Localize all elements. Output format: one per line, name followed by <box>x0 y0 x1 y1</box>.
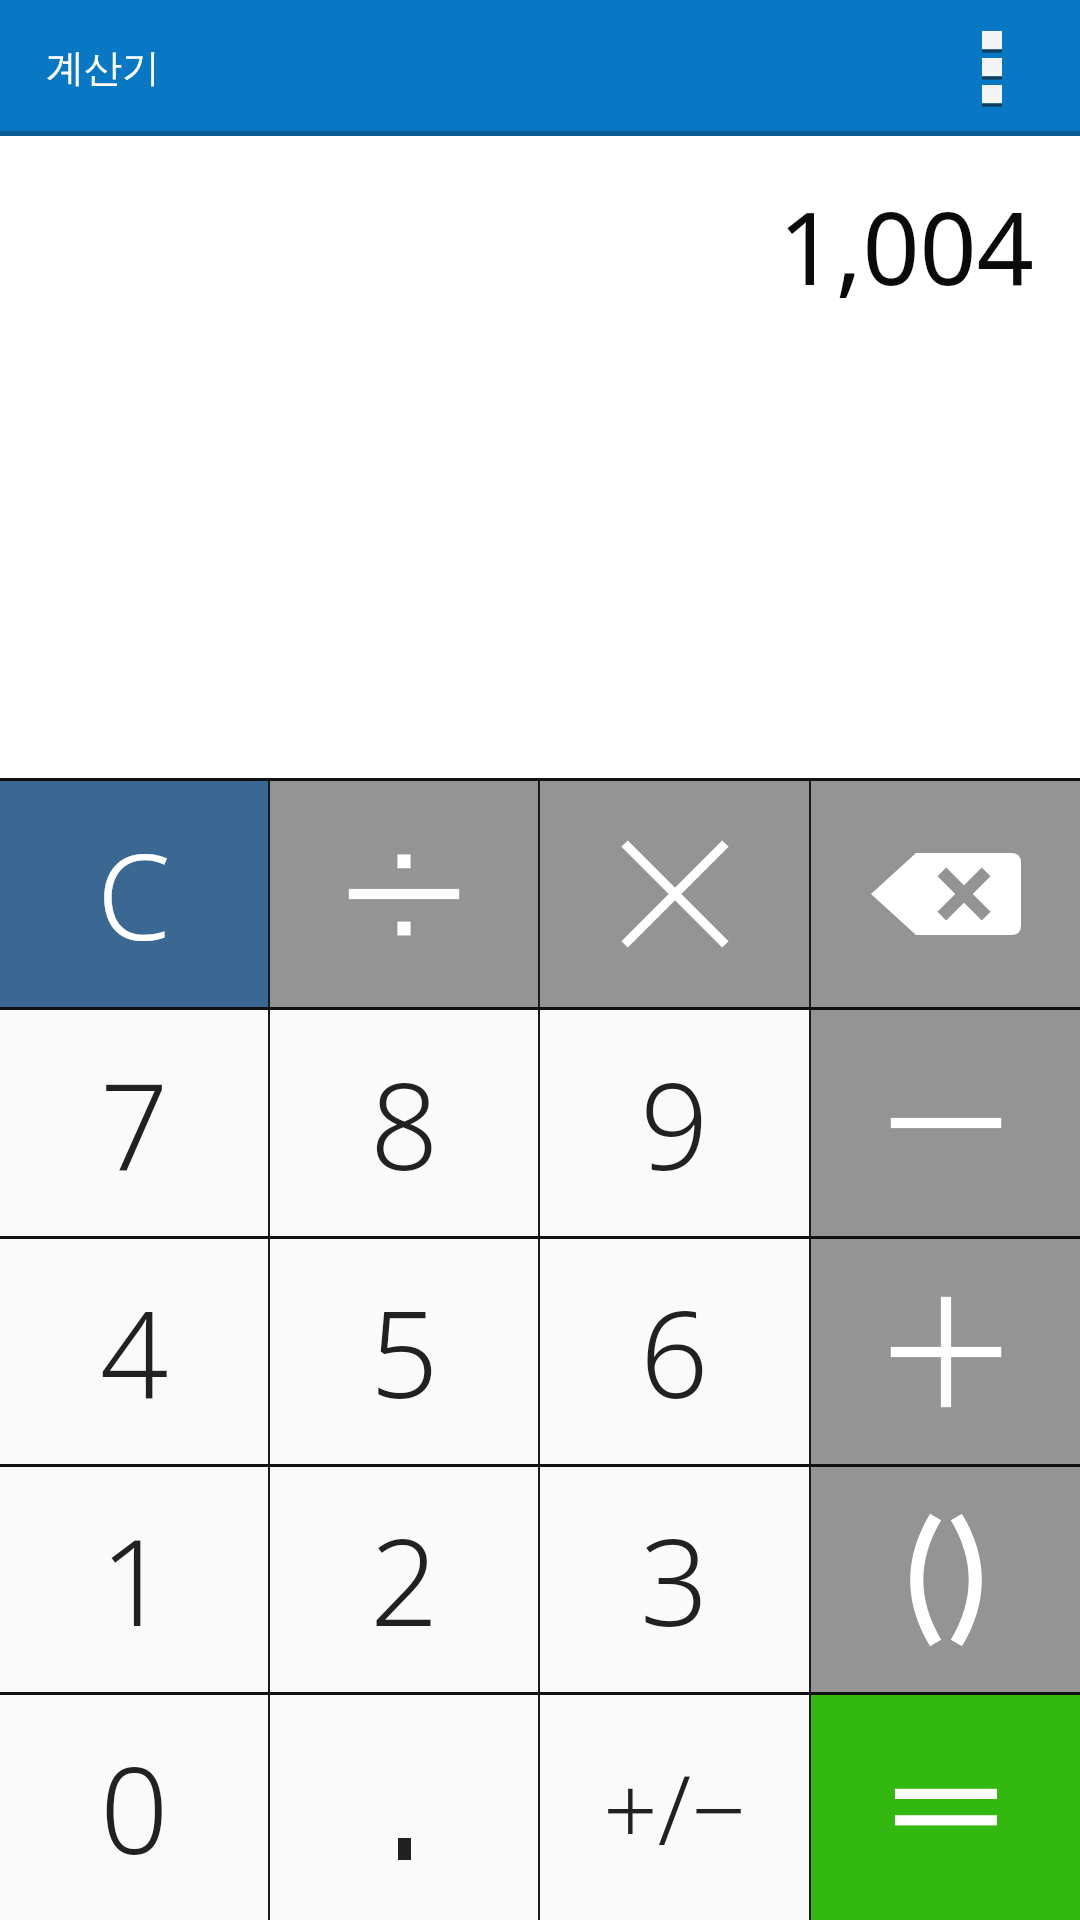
button[interactable]: More options <box>944 20 1040 116</box>
button[interactable]: 1 <box>0 1467 268 1692</box>
button[interactable]: 2 <box>270 1467 538 1692</box>
button[interactable]: Equals <box>811 1695 1080 1920</box>
button[interactable]: Multiply <box>540 781 809 1007</box>
staticText: 8 <box>370 1042 439 1205</box>
button[interactable] <box>270 1695 538 1920</box>
button[interactable]: Parentheses <box>811 1467 1080 1692</box>
staticText: 1,004 <box>778 178 1034 314</box>
button[interactable]: Clear <box>0 781 268 1007</box>
button[interactable]: 0 <box>0 1695 268 1920</box>
staticText: 3 <box>640 1498 709 1661</box>
staticText: 7 <box>100 1042 169 1205</box>
button[interactable]: 6 <box>540 1239 809 1464</box>
button[interactable]: 7 <box>0 1010 268 1236</box>
staticText: 1 <box>100 1498 169 1661</box>
button[interactable]: Backspace <box>811 781 1080 1007</box>
staticText: +/− <box>603 1742 746 1873</box>
button[interactable]: 5 <box>270 1239 538 1464</box>
staticText: 계산기 <box>46 44 160 92</box>
staticText: 2 <box>370 1498 439 1661</box>
button[interactable]: Divide <box>270 781 538 1007</box>
staticText: 4 <box>100 1270 169 1433</box>
button[interactable]: +/− <box>540 1695 809 1920</box>
staticText: C <box>97 814 171 975</box>
staticText: 6 <box>640 1270 709 1433</box>
button[interactable]: Minus <box>811 1010 1080 1236</box>
button[interactable]: 8 <box>270 1010 538 1236</box>
button[interactable]: Plus <box>811 1239 1080 1464</box>
staticText: 9 <box>640 1042 709 1205</box>
button[interactable]: 3 <box>540 1467 809 1692</box>
staticText: 5 <box>370 1270 439 1433</box>
staticText: 0 <box>100 1726 169 1889</box>
button[interactable]: 9 <box>540 1010 809 1236</box>
button[interactable]: 4 <box>0 1239 268 1464</box>
